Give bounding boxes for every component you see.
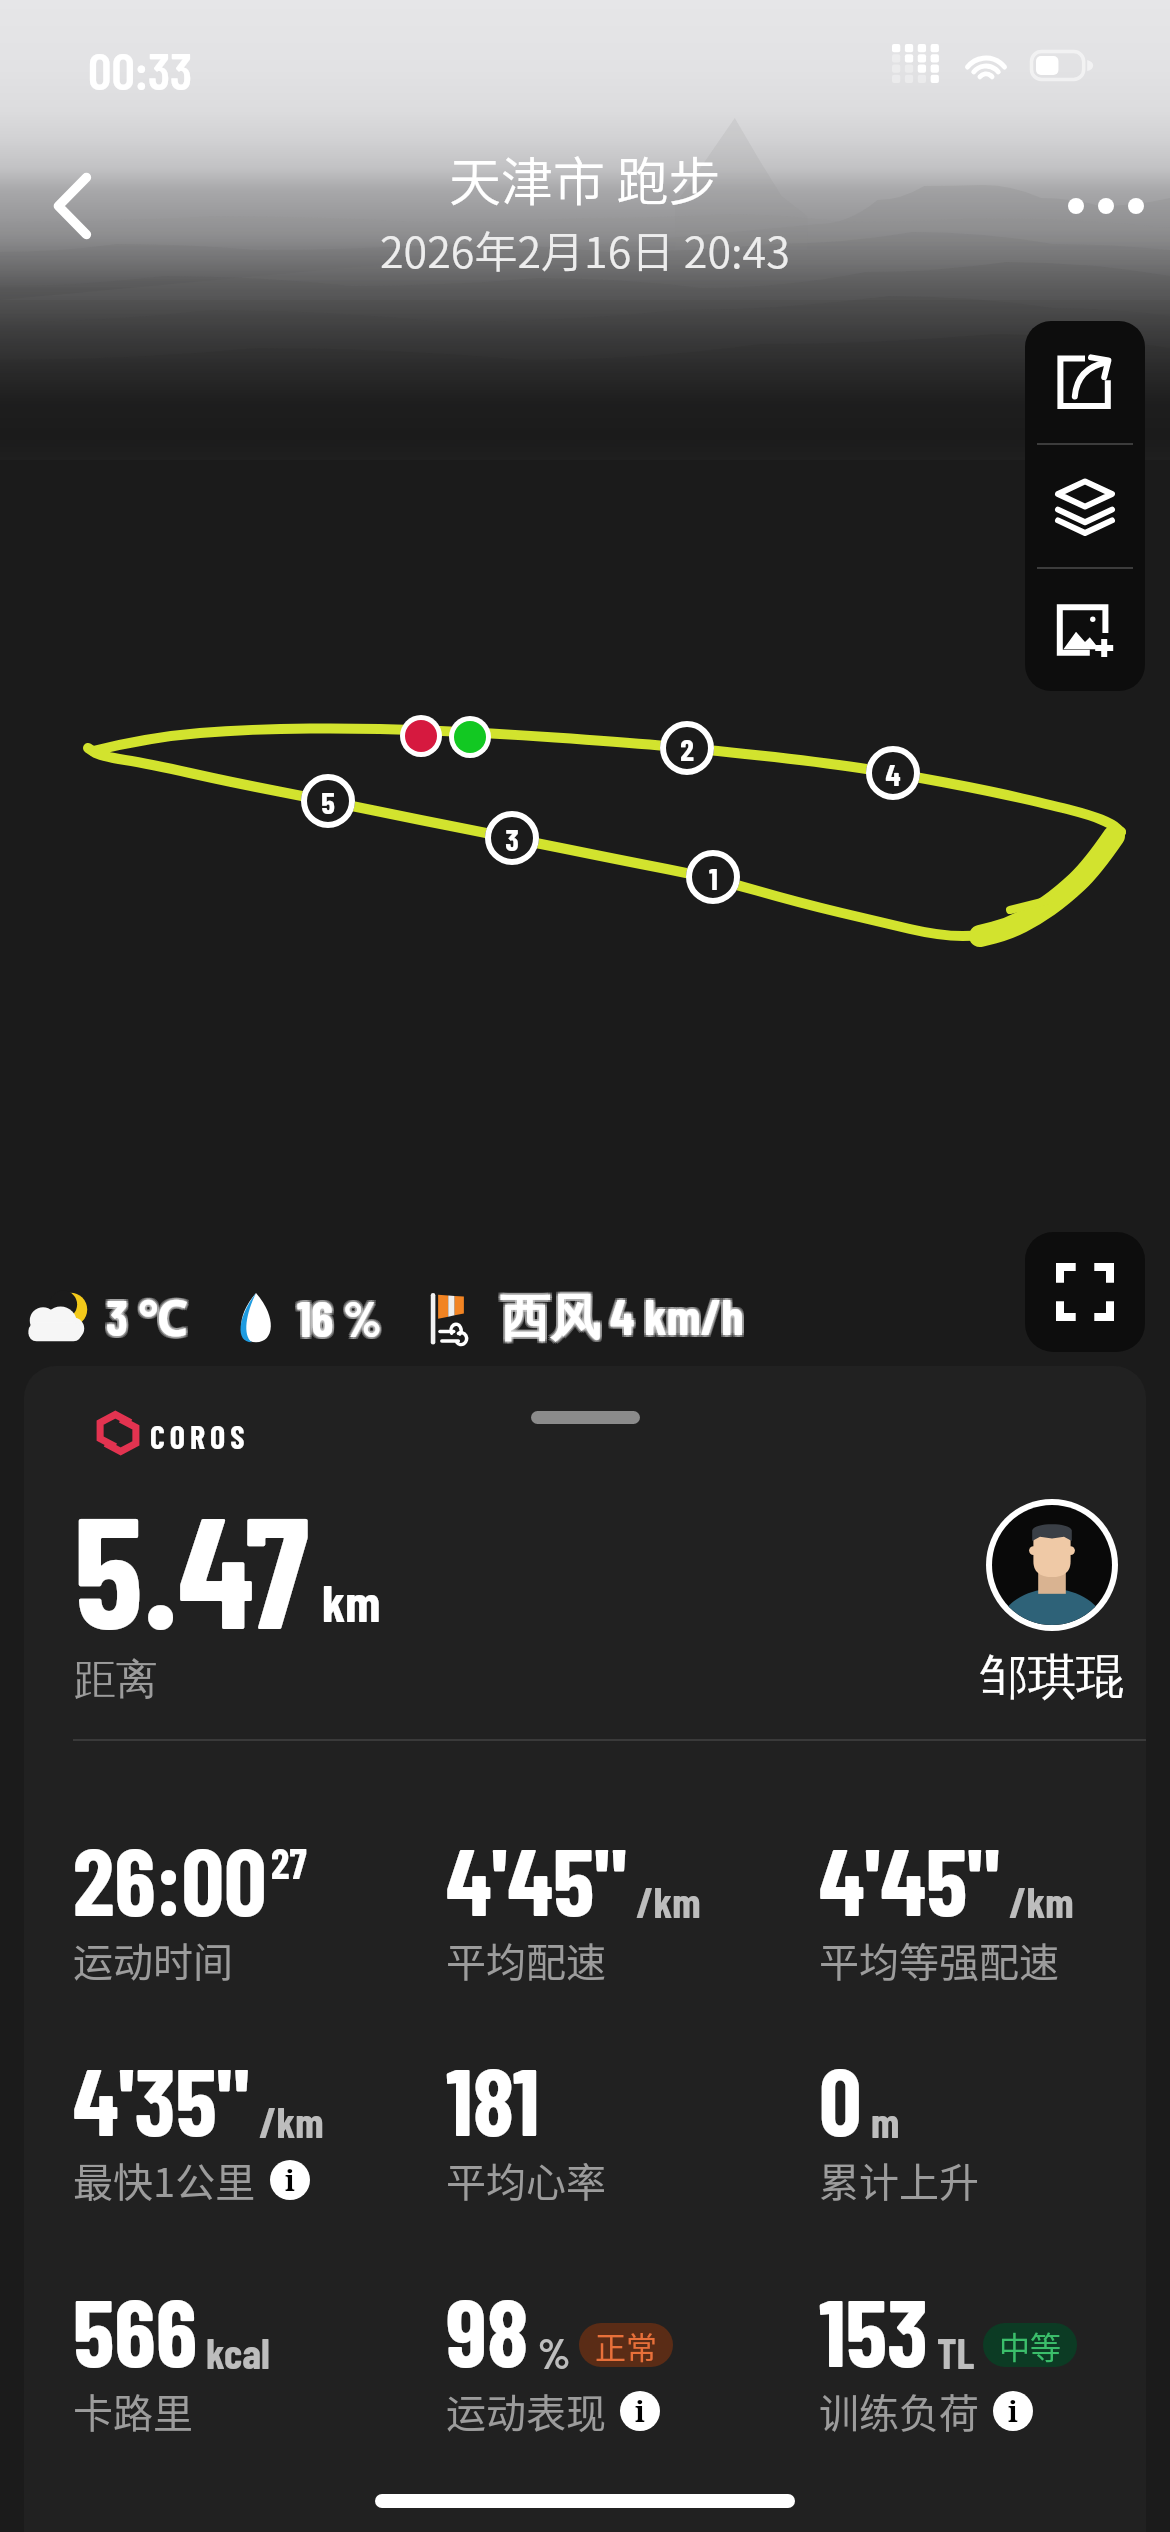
- staticText: m: [871, 2096, 900, 2146]
- staticText: 3 ℃: [108, 1285, 191, 1353]
- button[interactable]: Share: [1025, 321, 1145, 443]
- staticText: 16 %: [295, 1287, 380, 1347]
- staticText: 3 ℃: [108, 1283, 191, 1351]
- staticText: 2026年2月16日 20:43: [380, 218, 790, 280]
- staticText: 运动表现: [446, 2382, 606, 2440]
- staticText: 3 ℃: [106, 1281, 189, 1349]
- staticText: 卡路里: [73, 2382, 193, 2440]
- staticText: 3 ℃: [104, 1285, 187, 1353]
- staticText: 西风 4 km/h: [500, 1287, 744, 1352]
- staticText: 天津市 跑步: [449, 141, 721, 216]
- button[interactable]: Info: [993, 2391, 1033, 2431]
- button[interactable]: More options: [1058, 158, 1154, 254]
- staticText: 16 %: [297, 1285, 382, 1345]
- staticText: 西风 4 km/h: [498, 1285, 742, 1350]
- staticText: 平均心率: [446, 2151, 606, 2209]
- staticText: 181: [446, 2042, 540, 2155]
- staticText: 5: [321, 783, 335, 820]
- staticText: COROS: [150, 1417, 250, 1455]
- staticText: 西风 4 km/h: [502, 1283, 746, 1348]
- staticText: 566: [73, 2273, 197, 2386]
- staticText: 98: [446, 2273, 529, 2386]
- staticText: 26:00: [73, 1822, 267, 1935]
- button[interactable]: Fullscreen: [1025, 1232, 1145, 1352]
- staticText: 平均等强配速: [819, 1931, 1059, 1989]
- staticText: 1: [709, 859, 718, 896]
- staticText: 16 %: [297, 1287, 382, 1347]
- staticText: 4'35": [73, 2042, 250, 2155]
- staticText: 4: [885, 755, 901, 792]
- staticText: 邹琪琨: [980, 1647, 1124, 1707]
- staticText: 西风 4 km/h: [502, 1287, 746, 1352]
- staticText: 3 ℃: [106, 1285, 189, 1353]
- staticText: 中等: [999, 2323, 1061, 2367]
- staticText: 距离: [74, 1654, 158, 1707]
- staticText: 4'45": [446, 1822, 627, 1935]
- staticText: 西风 4 km/h: [502, 1285, 746, 1350]
- button[interactable]: Map layers: [1025, 445, 1145, 567]
- staticText: 最快1公里: [73, 2151, 256, 2209]
- button[interactable]: Info: [620, 2391, 660, 2431]
- staticText: 16 %: [299, 1285, 384, 1345]
- staticText: 3: [505, 820, 519, 857]
- staticText: 累计上升: [819, 2151, 979, 2209]
- staticText: 16 %: [295, 1289, 380, 1349]
- staticText: 西风 4 km/h: [498, 1287, 742, 1352]
- staticText: 平均配速: [446, 1931, 606, 1989]
- staticText: 训练负荷: [819, 2382, 979, 2440]
- staticText: %: [538, 2327, 571, 2377]
- staticText: /km: [259, 2096, 324, 2146]
- button[interactable]: Add photo: [1025, 569, 1145, 691]
- staticText: 0: [819, 2042, 862, 2155]
- staticText: 运动时间: [73, 1931, 233, 1989]
- staticText: 3 ℃: [108, 1281, 191, 1349]
- staticText: 3 ℃: [104, 1281, 187, 1349]
- staticText: 16 %: [295, 1285, 380, 1345]
- staticText: TL: [937, 2327, 975, 2377]
- staticText: 5.47: [74, 1472, 310, 1660]
- staticText: 16 %: [299, 1289, 384, 1349]
- staticText: 西风 4 km/h: [500, 1283, 744, 1348]
- staticText: i: [285, 2161, 295, 2199]
- button[interactable]: Profile: [992, 1505, 1112, 1625]
- staticText: 4'45": [819, 1822, 1000, 1935]
- staticText: km: [322, 1570, 381, 1632]
- staticText: 153: [819, 2273, 928, 2386]
- staticText: i: [635, 2392, 645, 2430]
- staticText: 16 %: [297, 1289, 382, 1349]
- staticText: 00:33: [88, 38, 193, 100]
- staticText: 2: [680, 730, 694, 767]
- staticText: 3 ℃: [104, 1283, 187, 1351]
- staticText: 3 ℃: [106, 1283, 189, 1351]
- staticText: 西风 4 km/h: [498, 1283, 742, 1348]
- staticText: kcal: [206, 2327, 270, 2377]
- staticText: 正常: [595, 2323, 657, 2367]
- staticText: i: [1008, 2392, 1018, 2430]
- staticText: 西风 4 km/h: [500, 1285, 744, 1350]
- staticText: 27: [271, 1837, 307, 1887]
- button[interactable]: Back: [24, 158, 120, 254]
- staticText: /km: [1009, 1876, 1074, 1926]
- staticText: 16 %: [299, 1287, 384, 1347]
- button[interactable]: Info: [270, 2160, 310, 2200]
- staticText: /km: [636, 1876, 701, 1926]
